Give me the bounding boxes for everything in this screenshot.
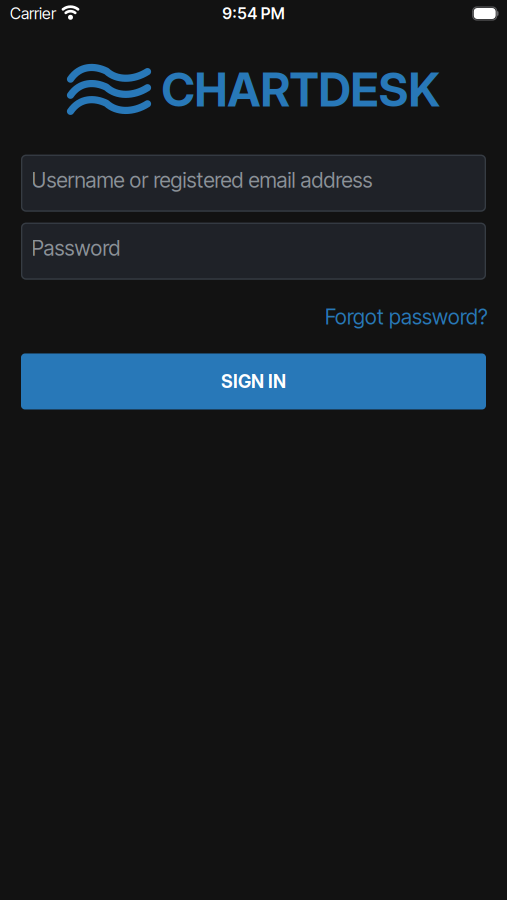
staticText: Forgot password? bbox=[325, 304, 488, 329]
staticText: CHARTDESK bbox=[161, 62, 440, 118]
staticText: SIGN IN bbox=[221, 371, 286, 392]
staticText: Carrier bbox=[10, 4, 56, 23]
button[interactable]: Password bbox=[21, 223, 486, 280]
button[interactable]: Username or registered email address bbox=[21, 155, 486, 212]
staticText: 9:54 bbox=[222, 4, 257, 23]
button[interactable]: SIGN IN bbox=[21, 353, 486, 409]
staticText: Password bbox=[31, 235, 120, 261]
button[interactable]: Forgot password? bbox=[325, 304, 488, 329]
staticText: Username or registered email address bbox=[31, 167, 372, 193]
staticText: PM bbox=[261, 4, 285, 23]
